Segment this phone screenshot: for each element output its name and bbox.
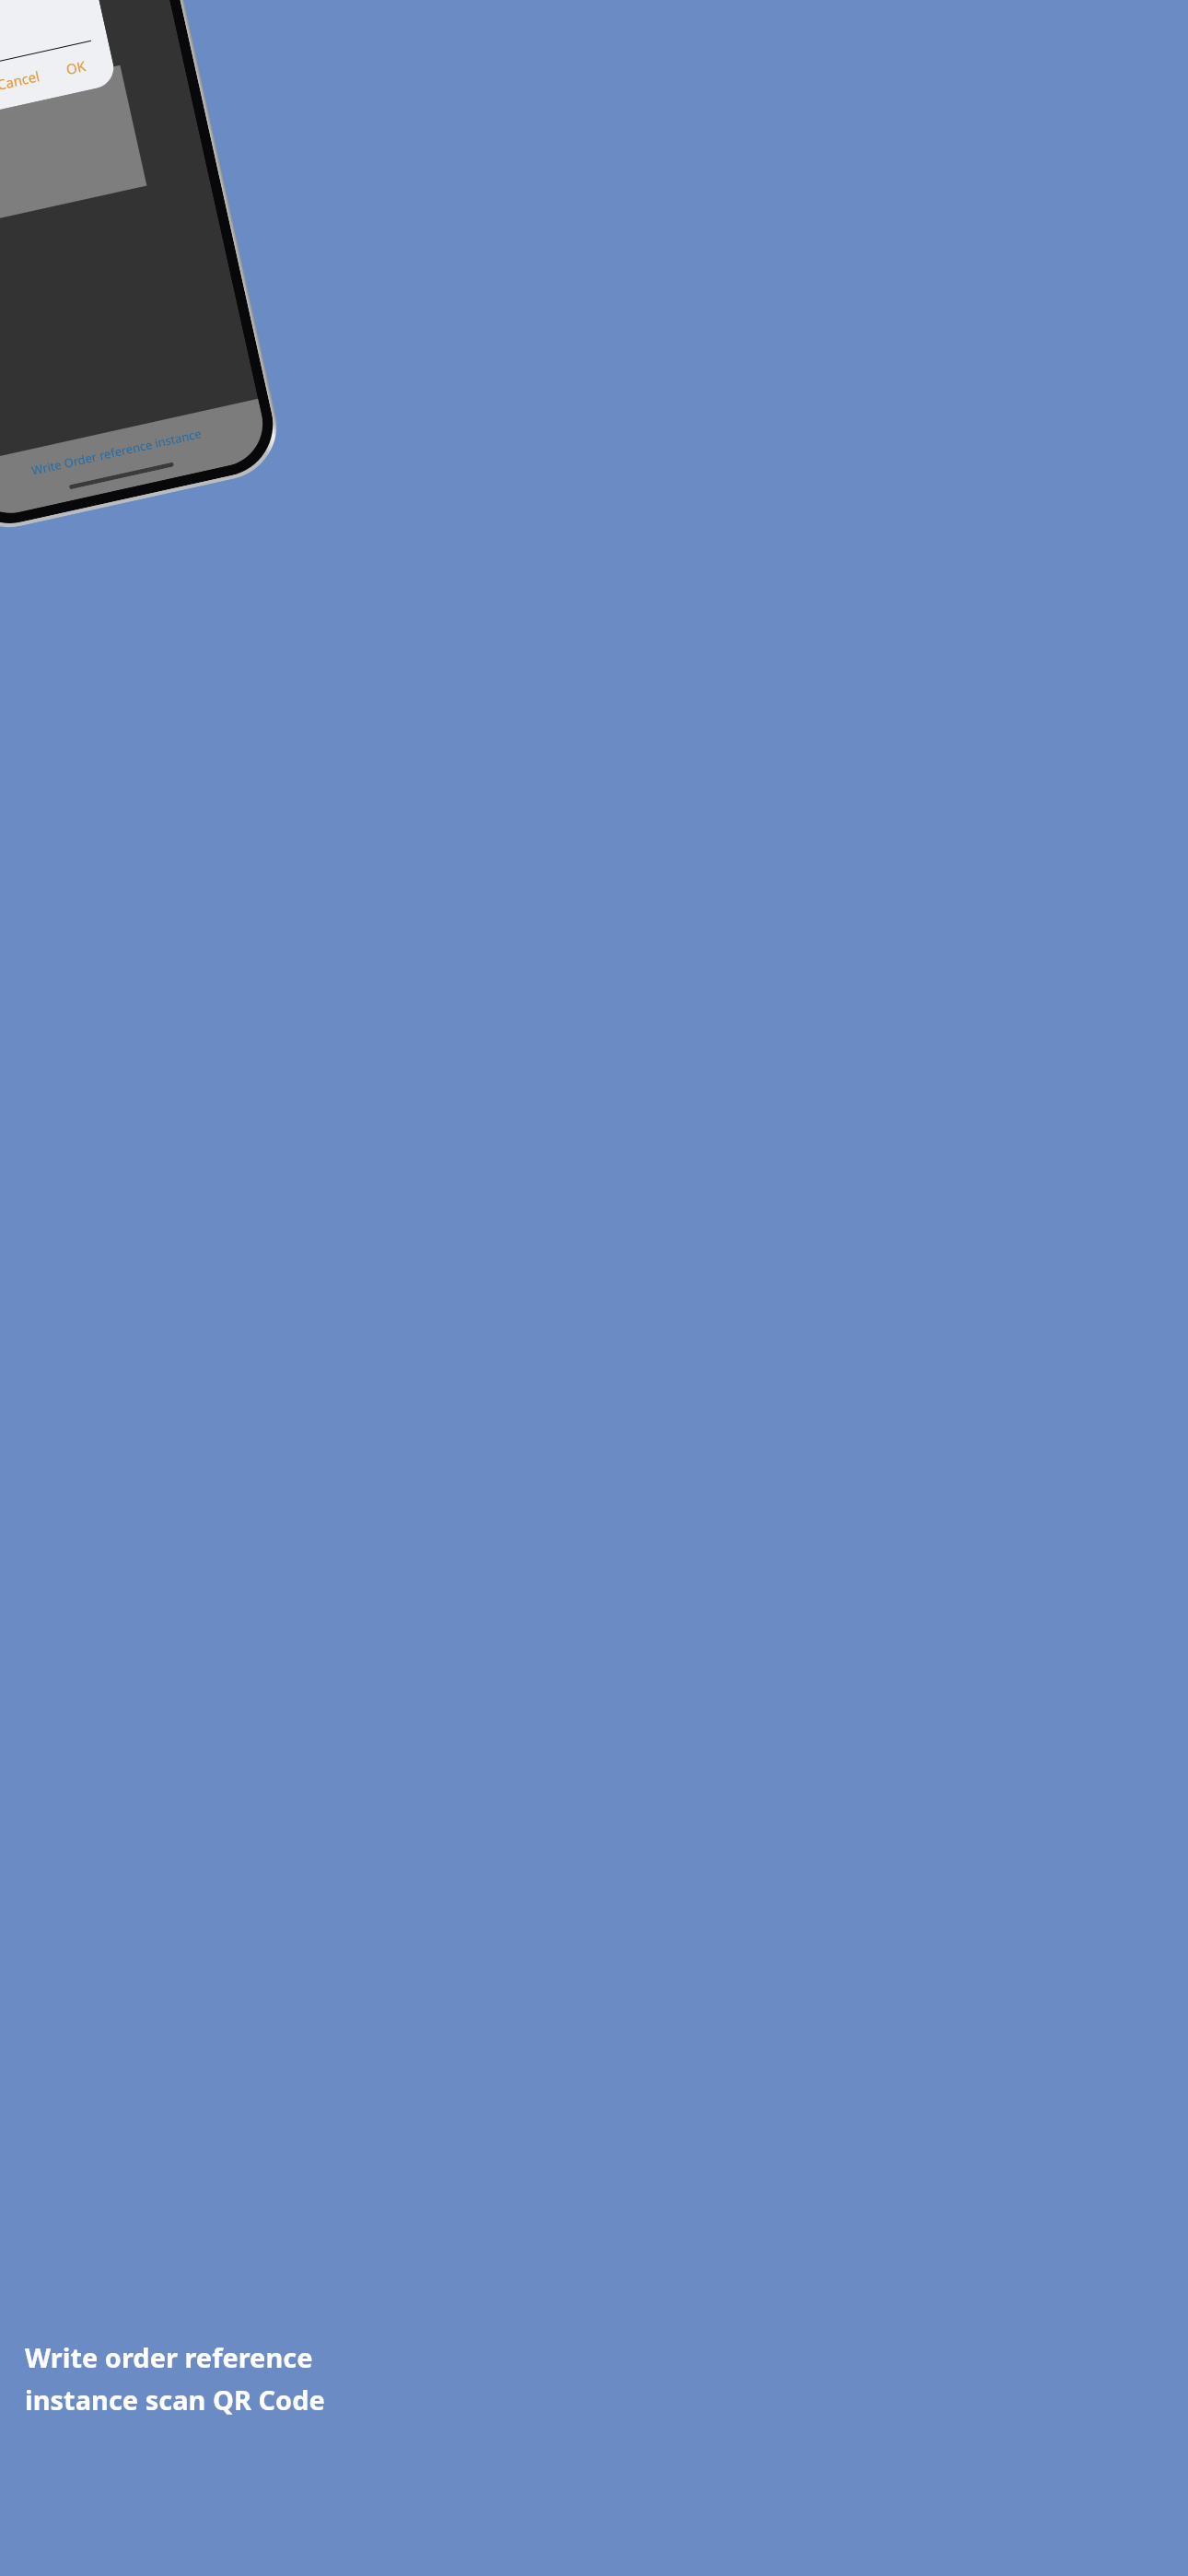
staticText: OK <box>64 56 88 78</box>
staticText: instance scan QR Code <box>25 2382 325 2418</box>
button[interactable]: OK <box>52 45 100 90</box>
button[interactable]: Cancel <box>0 55 53 105</box>
staticText: Cancel <box>0 66 41 94</box>
button[interactable]: SM <box>0 16 91 82</box>
other: Home gesture bar <box>69 462 174 490</box>
button[interactable]: Write Order reference instance <box>30 425 203 479</box>
staticText: Write order reference <box>25 2339 313 2375</box>
